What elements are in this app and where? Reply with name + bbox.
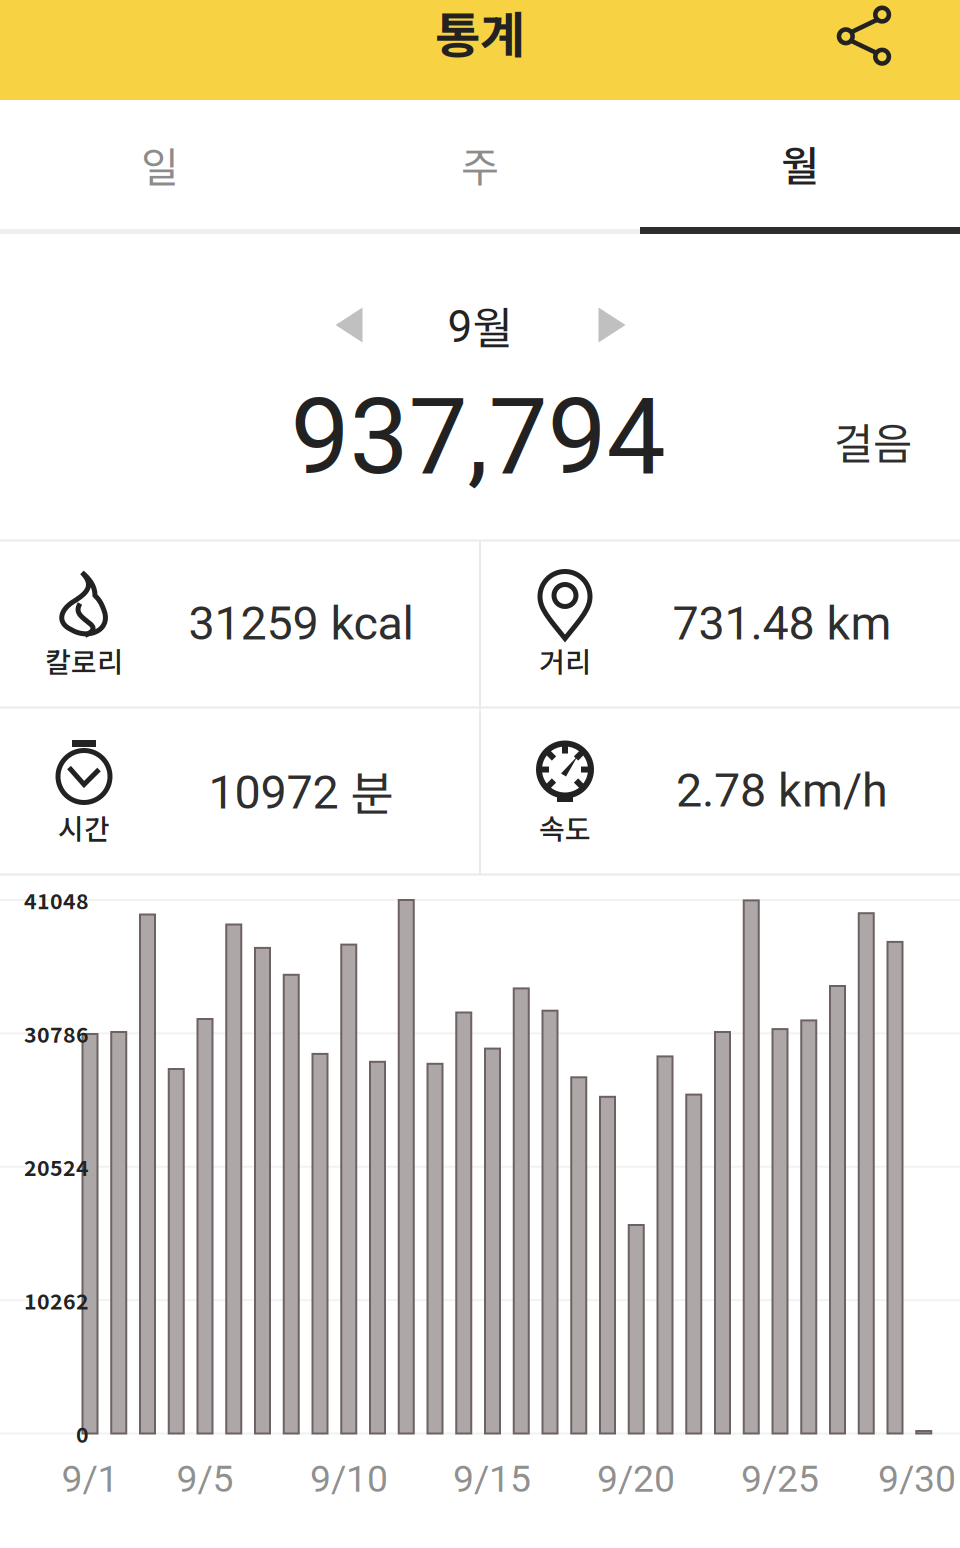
staticText: 거리 — [539, 640, 591, 681]
staticText: 10972 분 — [208, 757, 393, 824]
staticText: 속도 — [539, 807, 591, 848]
staticText: 2.78 km/h — [676, 763, 888, 818]
button[interactable]: 주 — [320, 100, 640, 234]
staticText: 31259 kcal — [188, 596, 413, 651]
staticText: 9/30 — [878, 1457, 956, 1501]
staticText: 칼로리 — [45, 640, 123, 681]
staticText: 30786 — [24, 1018, 89, 1049]
staticText: 731.48 km — [672, 596, 891, 651]
staticText: 9/15 — [453, 1457, 531, 1501]
staticText: 41048 — [24, 885, 89, 915]
button[interactable]: 월 — [640, 100, 960, 234]
staticText: 937,794 — [290, 375, 665, 499]
button[interactable]: Share — [812, 0, 916, 81]
staticText: 10262 — [24, 1285, 89, 1316]
staticText: 9/1 — [61, 1457, 118, 1501]
staticText: 주 — [461, 135, 499, 194]
staticText: 9월 — [447, 293, 512, 357]
staticText: 9/5 — [176, 1457, 233, 1501]
button[interactable]: Previous month — [301, 280, 397, 370]
staticText: 0 — [76, 1418, 89, 1449]
staticText: 9/10 — [310, 1457, 388, 1501]
staticText: 월 — [781, 134, 819, 193]
staticText: 9/25 — [741, 1457, 819, 1501]
button[interactable]: Next month — [564, 280, 660, 370]
staticText: 시간 — [58, 807, 110, 848]
staticText: 9/20 — [597, 1457, 675, 1501]
staticText: 걸음 — [834, 410, 912, 472]
staticText: 통계 — [435, 0, 525, 68]
staticText: 20524 — [24, 1151, 89, 1182]
button[interactable]: 일 — [0, 100, 320, 234]
staticText: 일 — [141, 135, 179, 194]
